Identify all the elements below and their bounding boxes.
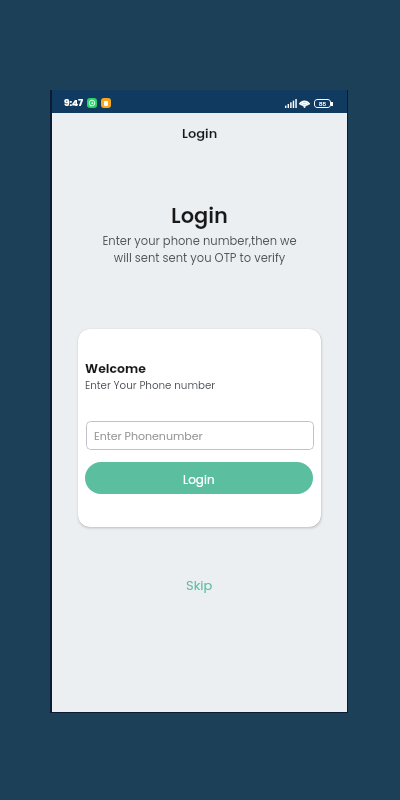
staticText: 9:47 <box>64 97 83 110</box>
staticText: Welcome <box>85 360 147 377</box>
staticText: Skip <box>186 576 213 594</box>
staticText: Login <box>182 124 218 142</box>
staticText: 85 <box>319 100 326 108</box>
staticText: Login <box>183 471 215 488</box>
staticText: Login <box>171 201 228 230</box>
button[interactable]: Login <box>85 462 313 494</box>
staticText: Enter your phone number,then we will sen… <box>102 233 297 266</box>
button[interactable]: Skip <box>172 571 227 599</box>
button[interactable]: Login <box>52 113 347 151</box>
staticText: Enter Phonenumber <box>94 428 203 443</box>
staticText: Enter Your Phone number <box>85 378 216 392</box>
button[interactable]: Enter Phonenumber <box>86 421 314 450</box>
